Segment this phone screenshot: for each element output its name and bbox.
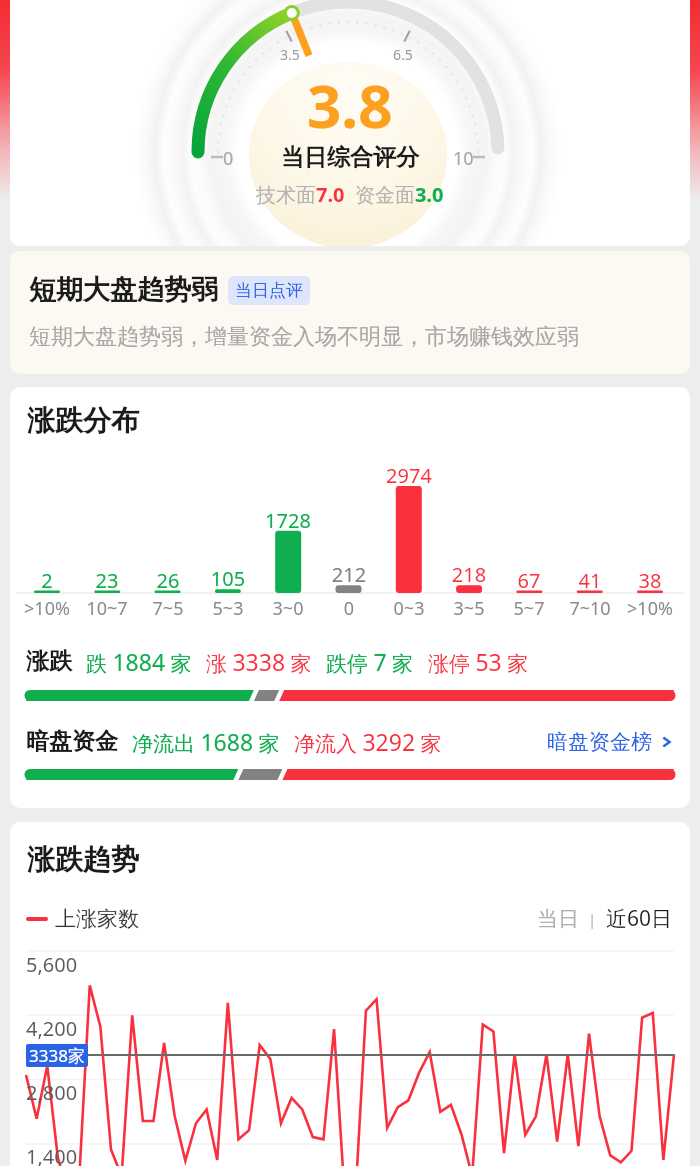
- button[interactable]: 短期大盘趋势弱: [10, 251, 690, 374]
- staticText: 净流出 1688 家: [132, 726, 280, 757]
- staticText: 2,800: [26, 1079, 78, 1106]
- staticText: |: [588, 909, 597, 929]
- staticText: 当日点评: [235, 280, 303, 301]
- staticText: 涨跌分布: [27, 403, 139, 438]
- staticText: 涨 3338 家: [206, 646, 312, 677]
- staticText: 短期大盘趋势弱，增量资金入场不明显，市场赚钱效应弱: [29, 323, 579, 351]
- staticText: 涨停 53 家: [428, 646, 529, 677]
- staticText: 跌 1884 家: [86, 646, 192, 677]
- button[interactable]: 近60日: [606, 904, 673, 933]
- staticText: 7~5: [136, 596, 200, 621]
- staticText: 当日综合评分: [281, 143, 419, 172]
- staticText: 2974: [379, 462, 439, 489]
- staticText: >10%: [618, 596, 682, 621]
- staticText: >10%: [15, 596, 79, 621]
- staticText: 26: [138, 567, 198, 594]
- staticText: 6.5: [393, 45, 413, 64]
- staticText: 10~7: [75, 596, 139, 621]
- staticText: 41: [560, 567, 620, 594]
- staticText: 0: [317, 596, 381, 621]
- staticText: 7~10: [558, 596, 622, 621]
- staticText: 3.8: [307, 64, 393, 146]
- staticText: 短期大盘趋势弱: [29, 273, 218, 307]
- staticText: 0~3: [377, 596, 441, 621]
- staticText: 0: [223, 146, 234, 171]
- staticText: 近60日: [606, 904, 673, 933]
- staticText: 暗盘资金榜: [547, 729, 652, 755]
- staticText: 4,200: [26, 1015, 78, 1042]
- staticText: 净流入 3292 家: [294, 726, 442, 757]
- staticText: 5~7: [497, 596, 561, 621]
- staticText: 涨跌: [26, 647, 72, 676]
- staticText: 上涨家数: [55, 906, 139, 932]
- staticText: 10: [453, 146, 474, 171]
- staticText: 暗盘资金: [26, 727, 118, 756]
- staticText: 23: [77, 567, 137, 594]
- staticText: 跌停 7 家: [326, 646, 414, 677]
- staticText: 3~0: [256, 596, 320, 621]
- staticText: 2: [17, 567, 77, 594]
- staticText: 105: [198, 565, 258, 592]
- staticText: 技术面7.0 资金面3.0: [256, 181, 444, 208]
- button[interactable]: 当日: [537, 906, 579, 932]
- staticText: 当日: [537, 906, 579, 932]
- staticText: 3.5: [280, 45, 300, 64]
- staticText: 1,400: [26, 1143, 78, 1166]
- staticText: 3338家: [29, 1044, 85, 1067]
- staticText: 3~5: [437, 596, 501, 621]
- button[interactable]: 0: [10, 0, 690, 246]
- staticText: 5~3: [196, 596, 260, 621]
- staticText: 212: [319, 561, 379, 588]
- staticText: 67: [499, 567, 559, 594]
- staticText: 218: [439, 561, 499, 588]
- staticText: 38: [620, 567, 680, 594]
- staticText: 1728: [258, 507, 318, 534]
- staticText: 涨跌趋势: [27, 842, 139, 877]
- staticText: 5,600: [26, 951, 78, 978]
- button[interactable]: 暗盘资金榜: [547, 729, 674, 755]
